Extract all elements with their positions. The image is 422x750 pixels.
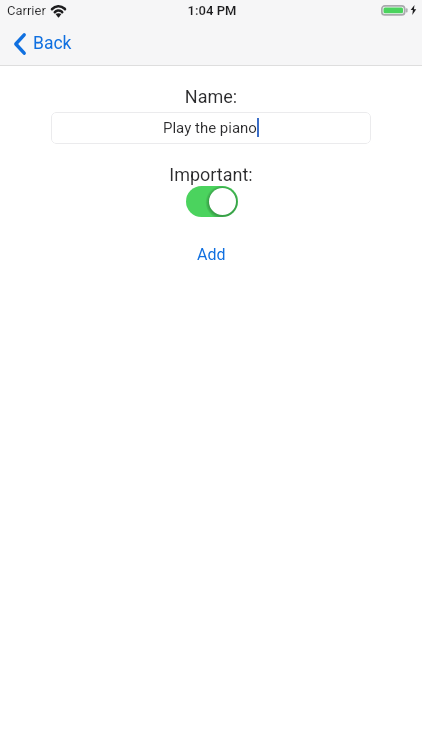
button[interactable]: Play the piano	[51, 112, 371, 144]
button[interactable]: Add	[187, 241, 236, 268]
staticText: Important:	[0, 164, 422, 185]
staticText: 1:04 PM	[1, 3, 422, 18]
staticText: Carrier	[7, 3, 46, 18]
button[interactable]: Back	[0, 31, 86, 57]
staticText: Name:	[0, 86, 422, 107]
staticText: Play the piano	[163, 119, 257, 137]
staticText: Add	[197, 245, 226, 264]
staticText: Back	[33, 33, 72, 54]
button[interactable]: Important toggle	[186, 186, 238, 217]
